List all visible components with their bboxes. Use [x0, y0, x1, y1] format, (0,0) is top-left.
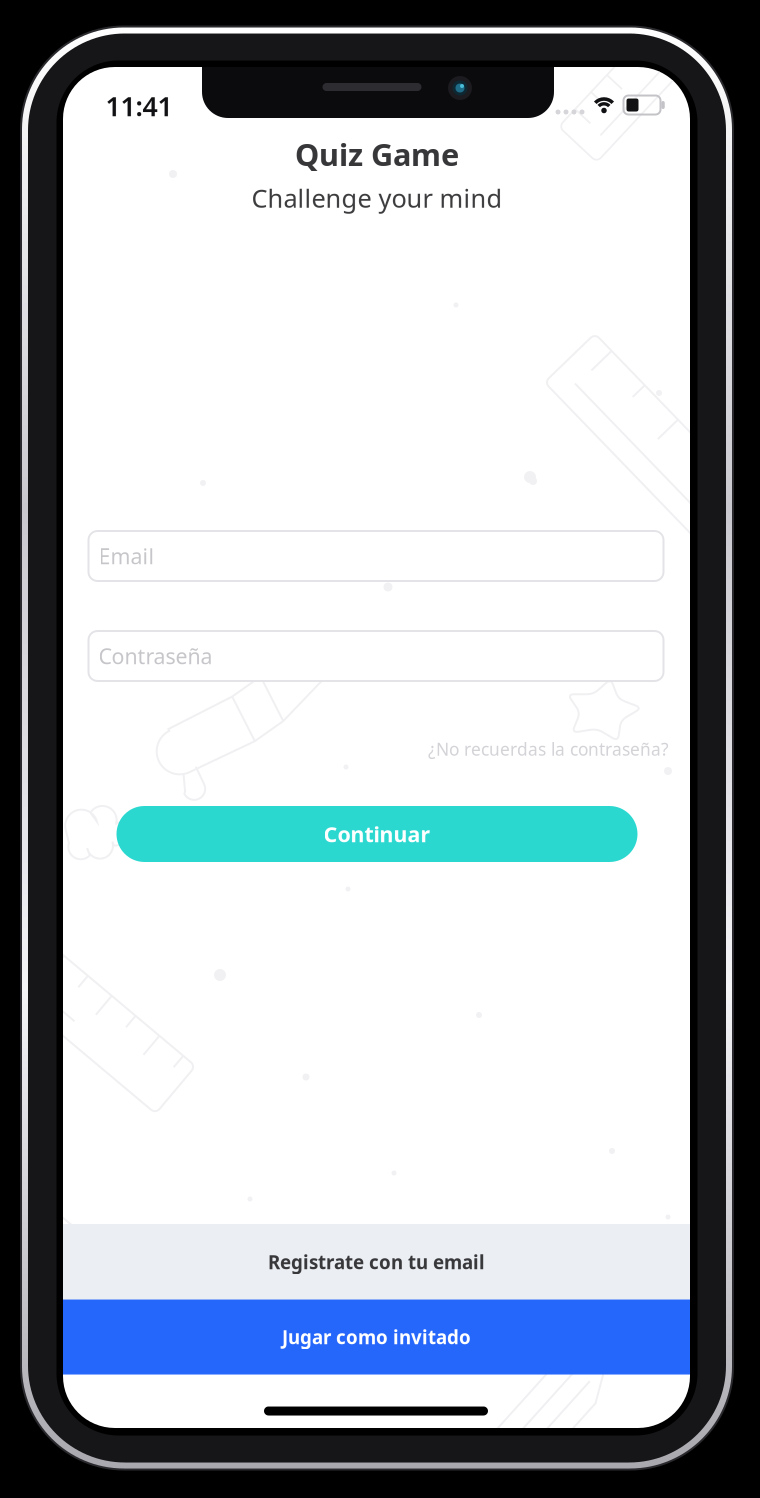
button[interactable]: Jugar como invitado — [63, 1299, 690, 1374]
staticText: ¿No recuerdas la contraseña? — [428, 737, 669, 760]
staticText: Contraseña — [98, 642, 212, 670]
staticText: Continuar — [323, 820, 430, 848]
staticText: Jugar como invitado — [282, 1325, 471, 1349]
staticText: 11:41 — [105, 88, 172, 124]
button[interactable]: Continuar — [116, 806, 637, 862]
staticText: Email — [98, 542, 154, 570]
button[interactable]: Registrate con tu email — [63, 1224, 690, 1300]
button[interactable]: Contraseña — [88, 631, 663, 681]
staticText: Quiz Game — [295, 134, 459, 174]
staticText: Registrate con tu email — [268, 1250, 485, 1274]
staticText: Challenge your mind — [251, 181, 502, 215]
button[interactable]: Email — [88, 531, 663, 581]
button[interactable]: ¿No recuerdas la contraseña? — [89, 732, 669, 766]
